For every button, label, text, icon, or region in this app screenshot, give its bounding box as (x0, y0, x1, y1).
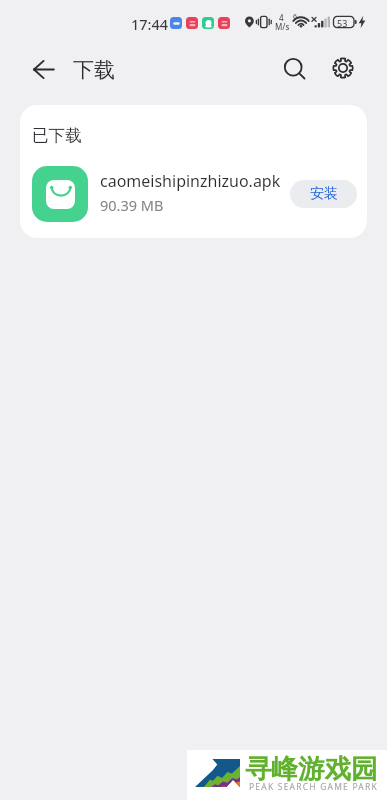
staticText: 寻峰游戏园 (245, 752, 378, 785)
staticText: 53 (337, 17, 348, 29)
staticText: 下载 (73, 57, 115, 83)
button[interactable]: Search (276, 50, 314, 88)
staticText: 90.39 MB (100, 195, 164, 215)
staticText: PEAK SEARCH GAME PARK (249, 781, 378, 793)
staticText: 安装 (310, 185, 338, 203)
staticText: 6 (293, 12, 298, 22)
staticText: 17:44 (131, 14, 169, 34)
button[interactable]: Settings (324, 49, 362, 87)
button[interactable]: Back (25, 50, 63, 88)
button[interactable]: 安装 (290, 180, 357, 208)
button[interactable] (20, 154, 367, 234)
staticText: 已下载 (32, 125, 82, 146)
staticText: caomeishipinzhizuo.apk (100, 170, 281, 192)
staticText: M/s (275, 21, 290, 32)
staticText: 4 (279, 12, 284, 23)
